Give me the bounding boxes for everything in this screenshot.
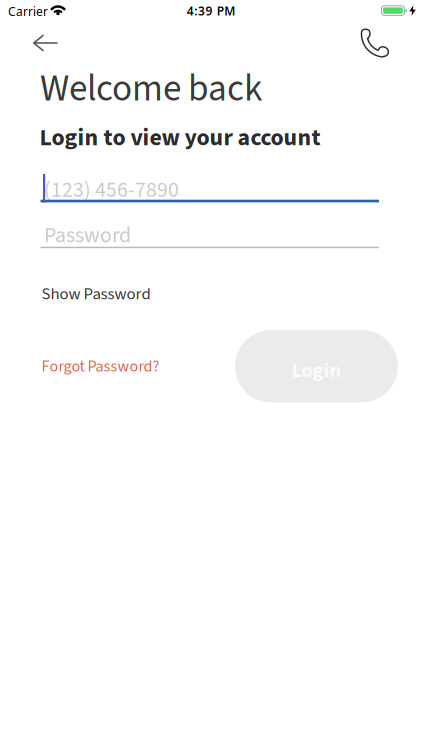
staticText: Password (44, 220, 131, 251)
button[interactable]: Forgot Password? (41, 355, 159, 378)
staticText: Welcome back (40, 62, 262, 115)
staticText: Login (291, 356, 341, 385)
button[interactable]: Show Password (41, 282, 150, 306)
button[interactable]: Call (360, 27, 391, 58)
button[interactable]: Phone number (40, 170, 379, 203)
staticText: Login to view your account (39, 121, 320, 155)
staticText: Forgot Password? (41, 355, 159, 378)
button[interactable]: Password (40, 217, 379, 250)
staticText: (123) 456-7890 (44, 174, 179, 205)
button[interactable]: Login (235, 330, 398, 402)
staticText: Carrier (8, 3, 48, 19)
staticText: 4:39 PM (187, 3, 235, 19)
button[interactable]: Back (32, 34, 58, 51)
staticText: Show Password (41, 282, 150, 306)
